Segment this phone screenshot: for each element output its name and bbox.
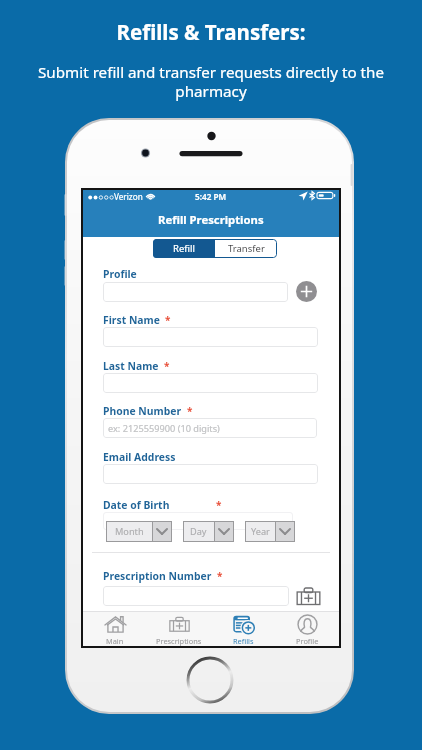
staticText: * xyxy=(217,569,223,583)
button[interactable]: Scan prescription xyxy=(294,583,322,609)
staticText: * xyxy=(165,313,171,327)
staticText: Profile xyxy=(103,267,137,281)
staticText: Transfer xyxy=(228,242,265,255)
staticText: 5:42 PM xyxy=(195,191,227,202)
staticText: Phone Number xyxy=(103,404,182,418)
button[interactable] xyxy=(103,373,318,393)
button[interactable]: Transfer xyxy=(215,239,277,258)
staticText: Main xyxy=(106,636,124,646)
button[interactable]: Main xyxy=(83,612,147,646)
staticText: Refill Prescriptions xyxy=(158,212,264,227)
button[interactable] xyxy=(103,327,318,347)
button[interactable]: Refills xyxy=(211,612,275,646)
staticText: ex: 2125559900 (10 digits) xyxy=(108,422,220,435)
staticText: Profile xyxy=(296,636,319,646)
button[interactable]: Month xyxy=(106,521,172,542)
button[interactable]: Profile xyxy=(275,612,339,646)
button[interactable] xyxy=(103,282,288,302)
staticText: Refills xyxy=(233,636,254,646)
staticText: Date of Birth xyxy=(103,498,170,512)
button[interactable]: Refill xyxy=(153,239,215,258)
staticText: Year xyxy=(251,525,270,538)
staticText: * xyxy=(164,359,170,373)
staticText: Month xyxy=(115,525,144,538)
button[interactable] xyxy=(103,464,318,484)
staticText: Day xyxy=(190,525,207,538)
staticText: Refills & Transfers: xyxy=(0,18,422,46)
staticText: Last Name xyxy=(103,359,159,373)
staticText: Verizon xyxy=(114,191,143,202)
staticText: Refill xyxy=(173,242,195,255)
staticText: * xyxy=(187,404,193,418)
staticText: * xyxy=(216,498,222,512)
button[interactable]: Year xyxy=(245,521,295,542)
staticText: Submit refill and transfer requests dire… xyxy=(26,62,396,101)
button[interactable]: Add profile xyxy=(296,281,317,302)
staticText: Email Address xyxy=(103,450,176,464)
staticText: Prescription Number xyxy=(103,569,212,583)
button[interactable]: ex: 2125559900 (10 digits) xyxy=(103,418,317,438)
button[interactable] xyxy=(103,586,289,606)
staticText: First Name xyxy=(103,313,160,327)
button[interactable]: Prescriptions xyxy=(147,612,211,646)
staticText: Prescriptions xyxy=(156,636,202,646)
button[interactable]: Day xyxy=(183,521,234,542)
